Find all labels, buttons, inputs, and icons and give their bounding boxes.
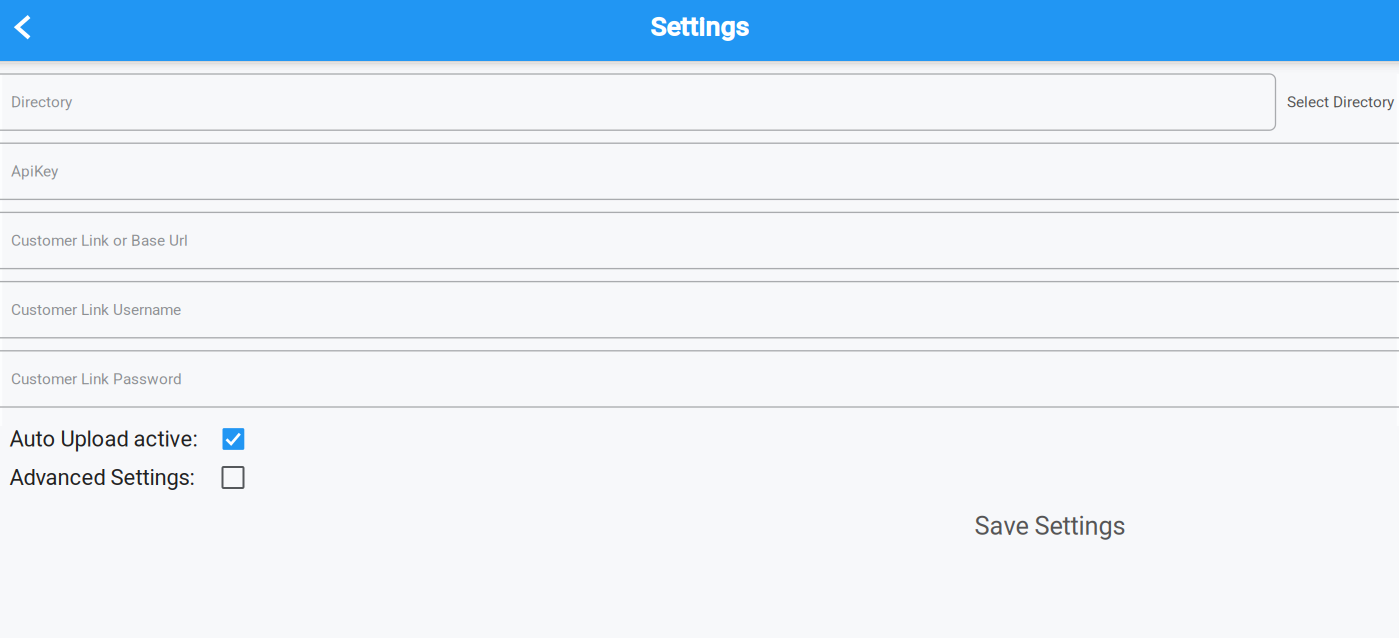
button[interactable]: Select Directory: [1287, 74, 1399, 130]
button[interactable]: Customer Link Password: [0, 351, 1399, 407]
staticText: Settings: [650, 11, 749, 43]
button[interactable]: Customer Link or Base Url: [0, 212, 1399, 269]
staticText: Customer Link Password: [11, 370, 182, 388]
staticText: Advanced Settings:: [9, 465, 194, 490]
button[interactable]: Customer Link Username: [0, 282, 1399, 338]
staticText: Directory: [11, 93, 72, 111]
staticText: Auto Upload active:: [9, 426, 197, 452]
staticText: Customer Link Username: [11, 301, 181, 319]
button[interactable]: Advanced Settings:: [0, 462, 260, 492]
button[interactable]: Directory: [0, 74, 1275, 130]
button[interactable]: Back: [0, 0, 46, 58]
button[interactable]: ApiKey: [0, 143, 1399, 199]
staticText: ApiKey: [11, 162, 58, 180]
staticText: Select Directory: [1287, 93, 1394, 111]
button[interactable]: Auto Upload active:: [0, 424, 260, 454]
button[interactable]: Save Settings: [960, 504, 1140, 548]
staticText: Customer Link or Base Url: [11, 231, 188, 249]
staticText: Save Settings: [974, 511, 1125, 541]
